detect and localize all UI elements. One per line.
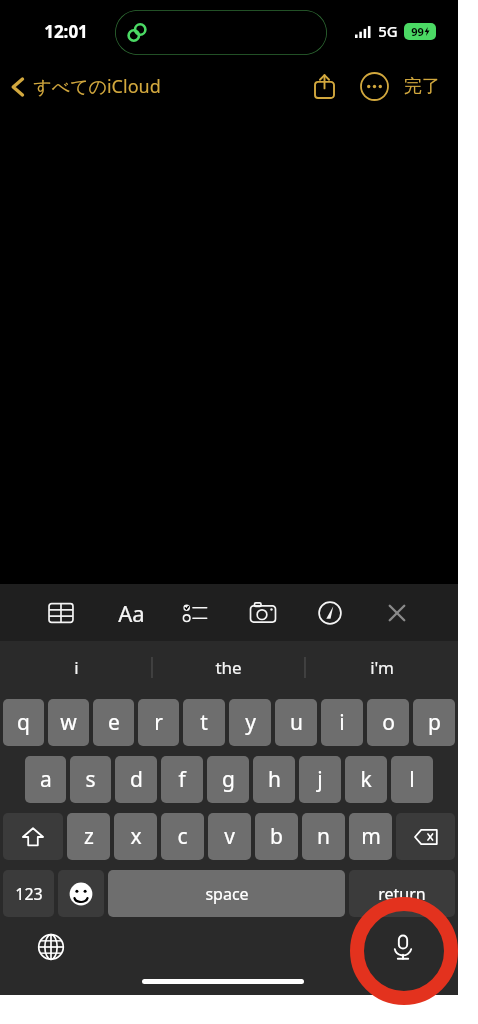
- button[interactable]: p: [413, 699, 455, 746]
- button[interactable]: y: [229, 699, 271, 746]
- staticText: j: [317, 765, 323, 794]
- button[interactable]: キーボードを切り替え: [28, 924, 74, 970]
- staticText: g: [222, 765, 235, 794]
- staticText: i: [339, 708, 345, 737]
- staticText: x: [130, 822, 142, 851]
- staticText: r: [154, 708, 163, 737]
- staticText: y: [245, 708, 256, 737]
- staticText: すべてのiCloud: [33, 74, 161, 99]
- button[interactable]: h: [253, 756, 295, 803]
- staticText: v: [224, 822, 235, 851]
- button[interactable]: t: [183, 699, 225, 746]
- staticText: h: [268, 765, 281, 794]
- button[interactable]: x: [114, 813, 157, 860]
- staticText: e: [108, 708, 120, 737]
- button[interactable]: 完了: [400, 69, 444, 104]
- button[interactable]: s: [70, 756, 111, 803]
- staticText: f: [178, 765, 186, 794]
- button[interactable]: マークアップ: [309, 592, 351, 634]
- button[interactable]: j: [299, 756, 341, 803]
- staticText: i: [74, 656, 79, 679]
- button[interactable]: l: [391, 756, 433, 803]
- button[interactable]: z: [67, 813, 110, 860]
- button[interactable]: 書式: [107, 592, 149, 634]
- staticText: 123: [15, 883, 43, 905]
- staticText: 5G: [378, 21, 398, 41]
- button[interactable]: q: [3, 699, 44, 746]
- button[interactable]: return: [349, 870, 455, 917]
- staticText: i'm: [370, 656, 394, 679]
- staticText: Aa: [118, 598, 145, 628]
- button[interactable]: 閉じる: [376, 592, 418, 634]
- staticText: space: [205, 883, 249, 905]
- button[interactable]: space: [108, 870, 345, 917]
- staticText: u: [290, 708, 303, 737]
- button[interactable]: i: [321, 699, 363, 746]
- button[interactable]: 共有: [304, 66, 344, 106]
- button[interactable]: d: [115, 756, 157, 803]
- button[interactable]: i: [0, 641, 152, 694]
- staticText: l: [409, 765, 415, 794]
- button[interactable]: n: [302, 813, 345, 860]
- button[interactable]: v: [208, 813, 251, 860]
- button[interactable]: Shift: [3, 813, 63, 860]
- button[interactable]: m: [349, 813, 392, 860]
- staticText: 12:01: [44, 20, 88, 43]
- staticText: return: [378, 883, 426, 905]
- button[interactable]: すべてのiCloud: [10, 74, 161, 99]
- staticText: w: [60, 708, 77, 737]
- staticText: t: [200, 708, 208, 737]
- staticText: k: [360, 765, 372, 794]
- staticText: b: [270, 822, 283, 851]
- button[interactable]: 123: [3, 870, 54, 917]
- staticText: the: [215, 656, 242, 679]
- button[interactable]: チェックリスト: [174, 592, 216, 634]
- button[interactable]: w: [48, 699, 89, 746]
- staticText: q: [17, 708, 30, 737]
- button[interactable]: g: [207, 756, 249, 803]
- button[interactable]: 詳細: [354, 66, 394, 106]
- button[interactable]: k: [345, 756, 387, 803]
- button[interactable]: c: [161, 813, 204, 860]
- button[interactable]: o: [367, 699, 409, 746]
- staticText: m: [361, 822, 381, 851]
- staticText: 完了: [404, 75, 440, 98]
- button[interactable]: u: [275, 699, 317, 746]
- button[interactable]: カメラ: [242, 592, 284, 634]
- staticText: n: [317, 822, 330, 851]
- staticText: d: [130, 765, 143, 794]
- button[interactable]: 絵文字: [58, 870, 104, 917]
- button[interactable]: b: [255, 813, 298, 860]
- staticText: a: [40, 765, 52, 794]
- staticText: o: [382, 708, 395, 737]
- staticText: z: [84, 822, 94, 851]
- staticText: p: [428, 708, 441, 737]
- button[interactable]: a: [25, 756, 66, 803]
- button[interactable]: e: [93, 699, 134, 746]
- button[interactable]: 音声入力: [380, 924, 426, 970]
- button[interactable]: r: [138, 699, 179, 746]
- button[interactable]: f: [161, 756, 203, 803]
- button[interactable]: the: [152, 641, 305, 694]
- button[interactable]: 表: [40, 592, 82, 634]
- staticText: s: [85, 765, 96, 794]
- staticText: c: [177, 822, 188, 851]
- button[interactable]: i'm: [305, 641, 458, 694]
- staticText: 99: [411, 24, 424, 39]
- button[interactable]: 削除: [396, 813, 455, 860]
